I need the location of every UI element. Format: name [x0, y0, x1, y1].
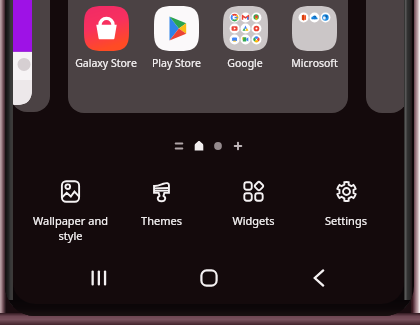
button[interactable]: Add page: [229, 137, 247, 155]
button[interactable]: Back: [297, 256, 341, 300]
button[interactable]: Home: [187, 256, 231, 300]
button[interactable]: Wallpaper and style: [25, 181, 115, 243]
button[interactable]: All pages: [170, 137, 188, 155]
button[interactable]: Settings: [301, 181, 391, 228]
button[interactable]: Themes: [116, 181, 206, 228]
button[interactable]: Recents: [77, 256, 121, 300]
staticText: Galaxy Store: [75, 56, 137, 70]
button[interactable]: Google: [211, 6, 279, 70]
staticText: Widgets: [232, 213, 275, 228]
staticText: Microsoft: [291, 56, 338, 70]
button[interactable]: Microsoft: [280, 6, 348, 70]
staticText: Themes: [141, 213, 182, 228]
staticText: Google: [227, 56, 263, 70]
button[interactable]: Widgets: [208, 181, 298, 228]
button[interactable]: Play Store: [142, 6, 210, 70]
staticText: Wallpaper and style: [33, 213, 108, 243]
button[interactable]: Home page: [190, 137, 208, 155]
button[interactable]: Page 3: [209, 137, 227, 155]
staticText: Play Store: [152, 56, 201, 70]
button[interactable]: Galaxy Store: [72, 6, 140, 70]
staticText: Settings: [325, 213, 367, 228]
